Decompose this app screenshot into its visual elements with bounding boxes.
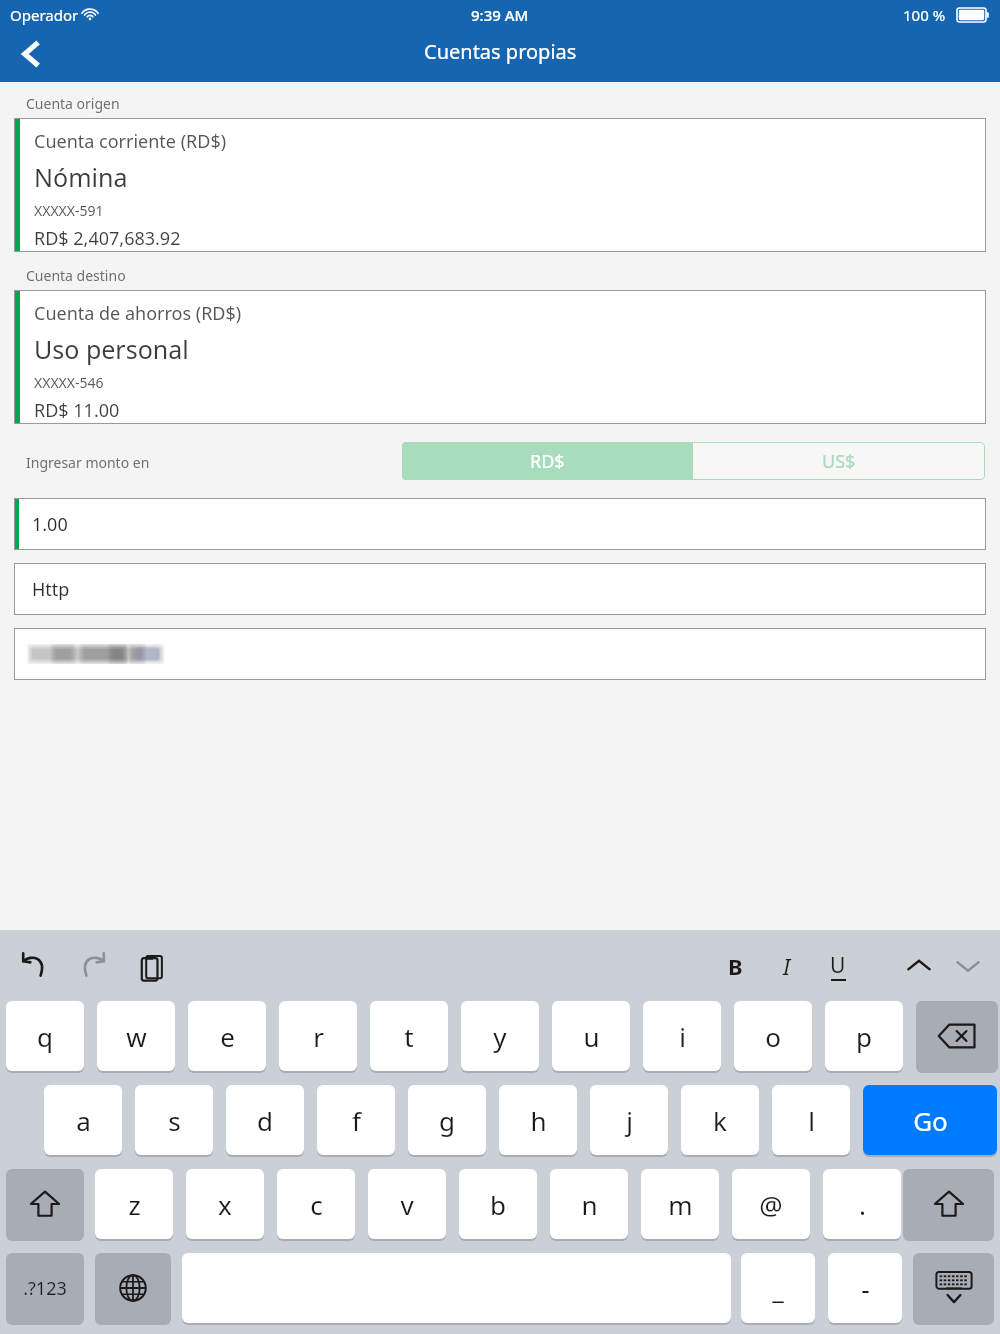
button[interactable]: Next field [944, 942, 992, 990]
staticText: Go [913, 1103, 948, 1138]
button[interactable]: RD$ [402, 442, 693, 480]
button[interactable]: o [734, 1001, 812, 1071]
button[interactable]: x [186, 1169, 264, 1239]
staticText: y [493, 1019, 507, 1054]
button[interactable]: U [814, 942, 862, 990]
button[interactable]: d [226, 1085, 304, 1155]
staticText: l [808, 1103, 815, 1138]
staticText: Cuenta corriente (RD$) [34, 129, 227, 154]
button[interactable]: n [550, 1169, 628, 1239]
staticText: 9:39 AM [471, 5, 529, 25]
button[interactable]: p [825, 1001, 903, 1071]
staticText: f [352, 1103, 361, 1138]
button[interactable]: f [317, 1085, 395, 1155]
staticText: XXXXX-546 [34, 373, 104, 392]
staticText: Cuenta de ahorros (RD$) [34, 301, 242, 326]
button[interactable]: v [368, 1169, 446, 1239]
button[interactable]: w [97, 1001, 175, 1071]
staticText: t [404, 1019, 414, 1054]
staticText: b [490, 1187, 506, 1222]
staticText: a [76, 1103, 91, 1138]
button[interactable]: a [44, 1085, 122, 1155]
button[interactable]: Http [14, 563, 986, 615]
staticText: Uso personal [34, 332, 189, 366]
staticText: Cuenta destino [26, 266, 126, 285]
staticText: Nómina [34, 160, 128, 194]
staticText: I [783, 951, 791, 981]
button[interactable]: Change keyboard language [95, 1253, 171, 1323]
button[interactable]: US$ [693, 442, 985, 480]
staticText: z [128, 1187, 141, 1222]
staticText: @ [759, 1187, 783, 1222]
staticText: c [310, 1187, 323, 1222]
button[interactable]: Previous field [895, 942, 943, 990]
staticText: j [626, 1103, 633, 1138]
button[interactable]: Paste [129, 942, 177, 990]
staticText: p [856, 1019, 872, 1054]
button[interactable]: 1.00 [14, 498, 986, 550]
button[interactable]: g [408, 1085, 486, 1155]
staticText: XXXXX-591 [34, 201, 104, 220]
staticText: v [400, 1187, 414, 1222]
staticText: Operador [10, 5, 79, 25]
staticText: d [257, 1103, 273, 1138]
staticText: g [439, 1103, 455, 1138]
button[interactable]: Email address field [14, 628, 986, 680]
button[interactable]: h [499, 1085, 577, 1155]
staticText: .?123 [23, 1276, 67, 1301]
button[interactable]: r [279, 1001, 357, 1071]
button[interactable]: @ [732, 1169, 810, 1239]
button[interactable]: Shift [6, 1169, 84, 1239]
button[interactable]: c [277, 1169, 355, 1239]
staticText: q [37, 1019, 53, 1054]
staticText: RD$ [530, 449, 565, 474]
button[interactable]: Go [863, 1085, 997, 1155]
button[interactable]: z [95, 1169, 173, 1239]
button[interactable]: Redo [69, 942, 117, 990]
staticText: - [861, 1271, 870, 1306]
button[interactable]: u [552, 1001, 630, 1071]
button[interactable]: _ [741, 1253, 815, 1323]
staticText: e [220, 1019, 235, 1054]
staticText: RD$ 2,407,683.92 [34, 226, 181, 251]
staticText: Cuenta origen [26, 94, 120, 113]
staticText: _ [772, 1271, 784, 1306]
button[interactable]: . [823, 1169, 901, 1239]
button[interactable]: B [711, 942, 759, 990]
staticText: w [126, 1019, 147, 1054]
staticText: 1.00 [32, 512, 68, 537]
staticText: o [765, 1019, 781, 1054]
button[interactable]: I [763, 942, 811, 990]
button[interactable]: - [828, 1253, 902, 1323]
button[interactable]: Cuenta de ahorros (RD$) [14, 290, 986, 424]
staticText: x [218, 1187, 232, 1222]
staticText: . [859, 1187, 866, 1222]
button[interactable]: l [772, 1085, 850, 1155]
button[interactable]: Cuenta corriente (RD$) [14, 118, 986, 252]
button[interactable]: Shift [903, 1169, 994, 1239]
button[interactable]: k [681, 1085, 759, 1155]
staticText: 100 % [903, 5, 946, 25]
button[interactable]: m [641, 1169, 719, 1239]
button[interactable]: q [6, 1001, 84, 1071]
button[interactable]: Back [0, 26, 62, 82]
button[interactable]: j [590, 1085, 668, 1155]
button[interactable]: Hide keyboard [913, 1253, 994, 1323]
button[interactable]: b [459, 1169, 537, 1239]
staticText: i [679, 1019, 686, 1054]
button[interactable]: .?123 [6, 1253, 84, 1323]
button[interactable]: s [135, 1085, 213, 1155]
staticText: u [583, 1019, 600, 1054]
button[interactable]: t [370, 1001, 448, 1071]
button[interactable]: e [188, 1001, 266, 1071]
button[interactable]: Backspace [916, 1001, 998, 1071]
staticText: n [581, 1187, 598, 1222]
staticText: US$ [822, 449, 856, 474]
staticText: Http [32, 577, 70, 602]
button[interactable]: y [461, 1001, 539, 1071]
staticText: RD$ 11.00 [34, 398, 120, 423]
staticText: U [830, 951, 846, 980]
button[interactable]: i [643, 1001, 721, 1071]
button[interactable]: Undo [10, 942, 58, 990]
